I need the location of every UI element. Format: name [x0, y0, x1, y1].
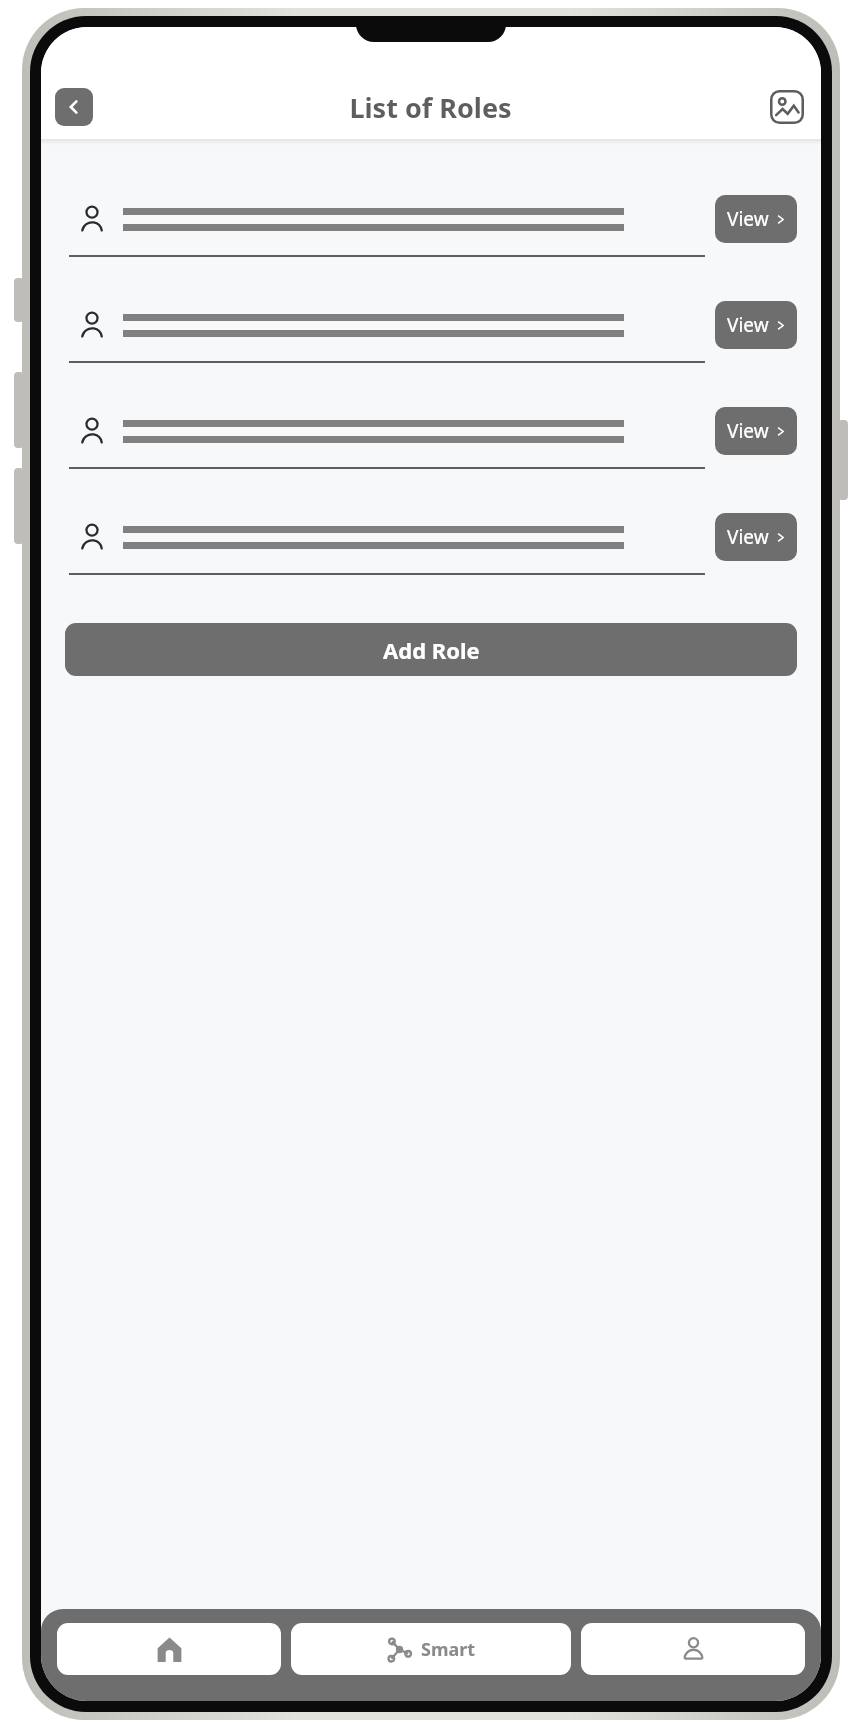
staticText: View [727, 206, 769, 232]
button[interactable]: View [715, 195, 797, 243]
staticText: Smart [421, 1637, 476, 1662]
staticText: Add Role [383, 635, 480, 665]
button[interactable]: View [715, 301, 797, 349]
button[interactable]: Image [767, 87, 807, 127]
button[interactable]: Home [57, 1623, 281, 1675]
staticText: View [727, 524, 769, 550]
staticText: View [727, 312, 769, 338]
staticText: List of Roles [349, 89, 512, 126]
staticText: View [727, 418, 769, 444]
button[interactable]: Smart [291, 1623, 571, 1675]
button[interactable]: View [715, 513, 797, 561]
button[interactable]: View [715, 407, 797, 455]
button[interactable]: Profile [581, 1623, 805, 1675]
button[interactable]: Back [55, 88, 93, 126]
button[interactable]: Add Role [65, 623, 797, 676]
